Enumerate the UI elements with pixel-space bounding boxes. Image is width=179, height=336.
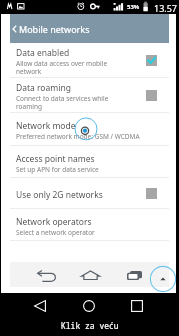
staticText: Data roaming [16,82,71,94]
staticText: Klik za veću [61,320,119,331]
button[interactable]: Use only 2G networks [0,178,179,209]
staticText: Set up APN for data service [16,165,99,174]
staticText: Allow data access over mobile network [16,59,108,76]
staticText: Data enabled [16,47,70,59]
staticText: Network operators [16,216,92,228]
button[interactable]: Network operators [0,209,179,241]
button[interactable]: Expand [150,266,176,292]
staticText: Network mode [16,120,76,132]
button[interactable]: Data roaming [0,78,179,113]
staticText: Connect to data services while roaming [16,94,109,111]
button[interactable]: Recent apps [131,300,143,312]
staticText: 53% [127,3,140,11]
staticText: Select a network operator [16,228,95,237]
staticText: 13.57 [154,2,178,14]
button[interactable]: Mobile networks [10,14,169,43]
button[interactable]: Back [37,270,56,282]
staticText: Preferred network mode: GSM / WCDMA [16,132,140,141]
staticText: Access point names [16,153,95,165]
button[interactable]: Home [83,300,95,312]
button[interactable]: Home [81,270,100,280]
button[interactable]: Recent apps [127,270,142,280]
button[interactable]: Data enabled [0,43,179,78]
staticText: Use only 2G networks [16,189,103,201]
staticText: Mobile networks [19,23,90,35]
button[interactable]: Access point names [0,146,179,178]
button[interactable]: Back [34,300,46,312]
button[interactable]: Network mode [0,113,179,146]
